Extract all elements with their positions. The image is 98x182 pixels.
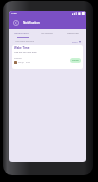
staticText: Your Daily Routine bbox=[15, 40, 34, 43]
staticText: 2:30 bbox=[26, 61, 30, 64]
button[interactable]: MY ISSUES bbox=[34, 29, 60, 37]
button[interactable]: Closed bbox=[70, 58, 81, 63]
staticText: Notification bbox=[23, 21, 40, 25]
staticText: COMPLAINTS bbox=[14, 32, 29, 35]
staticText: 11:50 bbox=[11, 12, 17, 15]
button[interactable]: COMPLAINTS bbox=[9, 29, 34, 37]
staticText: MY ISSUES bbox=[41, 32, 53, 35]
staticText: Add this for your daily bbox=[14, 51, 37, 54]
button[interactable]: Back bbox=[12, 19, 20, 27]
staticText: Contacts bbox=[14, 57, 22, 60]
button[interactable]: RESOLVED bbox=[60, 29, 86, 37]
button[interactable]: Filter bbox=[72, 40, 81, 43]
button[interactable]: Wake Time bbox=[12, 45, 83, 69]
staticText: Filter bbox=[72, 40, 78, 43]
staticText: Closed bbox=[72, 59, 79, 62]
staticText: RESOLVED bbox=[67, 32, 79, 35]
staticText: Kim Jo bbox=[18, 61, 24, 64]
staticText: Wake Time bbox=[14, 46, 30, 50]
